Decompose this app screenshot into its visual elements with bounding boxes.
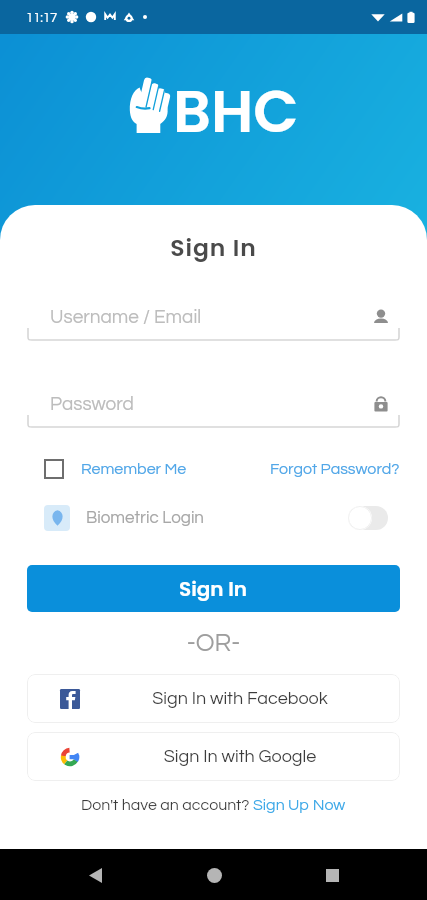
button[interactable]: Sign In with Google — [27, 732, 400, 781]
staticText: Username / Email — [50, 307, 371, 327]
button[interactable]: Password — [27, 388, 400, 428]
button[interactable]: Sign Up Now — [253, 797, 346, 813]
staticText: Password — [50, 394, 371, 414]
button[interactable]: Back — [71, 851, 119, 899]
staticText: Sign In — [0, 231, 427, 264]
button[interactable]: Username / Email — [27, 301, 400, 341]
button[interactable]: Forgot Password? — [270, 461, 400, 477]
staticText: Remember Me — [81, 461, 187, 477]
staticText: Sign In with Google — [80, 747, 400, 766]
button[interactable]: Home — [190, 851, 238, 899]
staticText: Don't have an account? — [81, 797, 253, 813]
staticText: Biometric Login — [86, 509, 204, 527]
staticText: Sign In with Facebook — [80, 689, 400, 708]
staticText: -OR- — [0, 630, 427, 656]
button[interactable]: Recents — [308, 851, 356, 899]
button[interactable]: Biometric Login — [44, 503, 388, 533]
staticText: 11:17 — [26, 11, 58, 24]
button[interactable]: Sign In with Facebook — [27, 674, 400, 723]
button[interactable]: Sign In — [27, 565, 400, 612]
staticText: Sign In — [179, 575, 248, 603]
button[interactable]: Remember Me — [44, 459, 187, 479]
staticText: BHC — [173, 70, 299, 153]
